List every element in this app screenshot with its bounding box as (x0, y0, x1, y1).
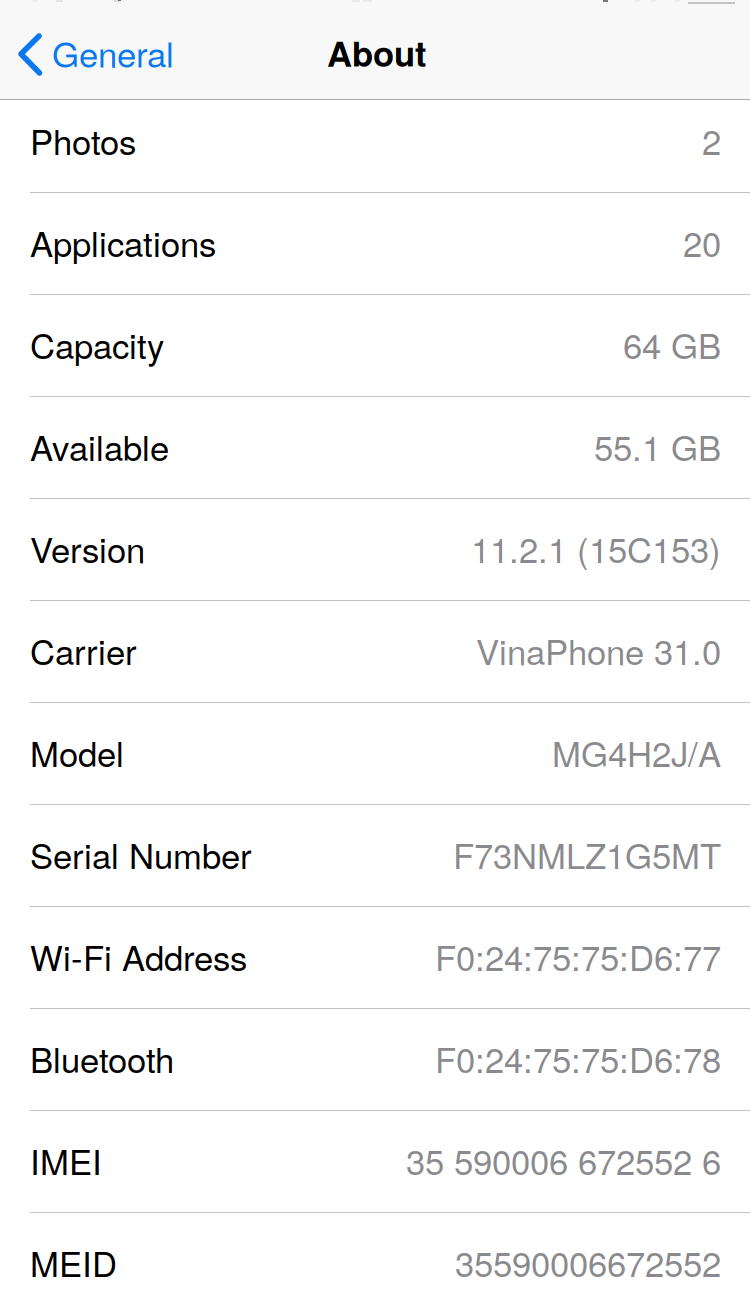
button[interactable]: Applications (0, 193, 750, 295)
staticText: Carrier (30, 625, 137, 675)
button[interactable]: General (0, 0, 184, 99)
staticText: Capacity (30, 319, 164, 369)
staticText: Model (30, 727, 124, 777)
staticText: General (52, 28, 174, 77)
staticText: MG4H2J/A (552, 727, 721, 777)
staticText: Applications (30, 217, 216, 267)
staticText: F0:24:75:75:D6:78 (435, 1033, 721, 1083)
button[interactable]: Available (0, 397, 750, 499)
staticText: Wi-Fi Address (30, 931, 247, 981)
staticText: 20 (683, 217, 721, 267)
staticText: F0:24:75:75:D6:77 (435, 931, 721, 981)
button[interactable]: Version (0, 499, 750, 601)
button[interactable]: Bluetooth (0, 1009, 750, 1111)
staticText: 2 (702, 115, 721, 165)
staticText: MEID (30, 1237, 117, 1287)
staticText: Available (30, 421, 169, 471)
staticText: 55.1 GB (594, 421, 721, 471)
button[interactable]: IMEI (0, 1111, 750, 1213)
button[interactable]: Capacity (0, 295, 750, 397)
staticText: Version (30, 523, 145, 573)
button[interactable]: Serial Number (0, 805, 750, 907)
staticText: F73NMLZ1G5MT (453, 829, 721, 879)
button[interactable]: MEID (0, 1213, 750, 1305)
staticText: 64 GB (623, 319, 721, 369)
staticText: Bluetooth (30, 1033, 174, 1083)
staticText: About (327, 28, 427, 77)
button[interactable]: Wi-Fi Address (0, 907, 750, 1009)
staticText: Photos (30, 115, 136, 165)
staticText: IMEI (30, 1135, 102, 1185)
button[interactable]: Photos (0, 91, 750, 193)
staticText: 11.2.1 (15C153) (471, 523, 721, 573)
staticText: 35 590006 672552 6 (406, 1135, 721, 1185)
staticText: 35590006672552 (455, 1237, 721, 1287)
staticText: VinaPhone 31.0 (476, 625, 721, 675)
button[interactable]: Carrier (0, 601, 750, 703)
staticText: Serial Number (30, 829, 252, 879)
button[interactable]: Model (0, 703, 750, 805)
